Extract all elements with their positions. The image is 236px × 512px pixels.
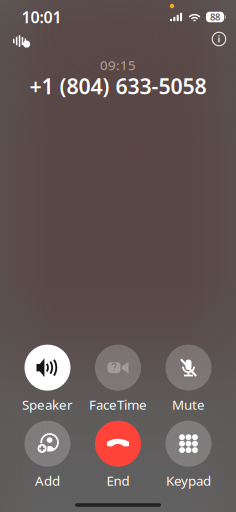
staticText: +1 (804) 633-5058 <box>29 72 206 100</box>
staticText: FaceTime <box>89 396 147 413</box>
staticText: 09:15 <box>100 56 136 74</box>
staticText: 88 <box>210 11 220 23</box>
button[interactable]: Live Voicemail <box>11 34 29 47</box>
staticText: Speaker <box>22 396 73 413</box>
button[interactable]: Keypad <box>155 421 221 489</box>
staticText: 10:01 <box>21 6 61 28</box>
staticText: Add <box>35 472 60 489</box>
staticText: End <box>106 472 129 489</box>
button[interactable]: Add <box>14 421 80 489</box>
button[interactable]: Speaker <box>14 345 80 413</box>
staticText: Mute <box>172 396 205 413</box>
staticText: Keypad <box>166 472 211 489</box>
button[interactable]: Mute <box>155 345 221 413</box>
button[interactable]: Call details <box>208 28 230 50</box>
button[interactable]: End <box>85 421 151 489</box>
button[interactable]: FaceTime <box>85 345 151 413</box>
